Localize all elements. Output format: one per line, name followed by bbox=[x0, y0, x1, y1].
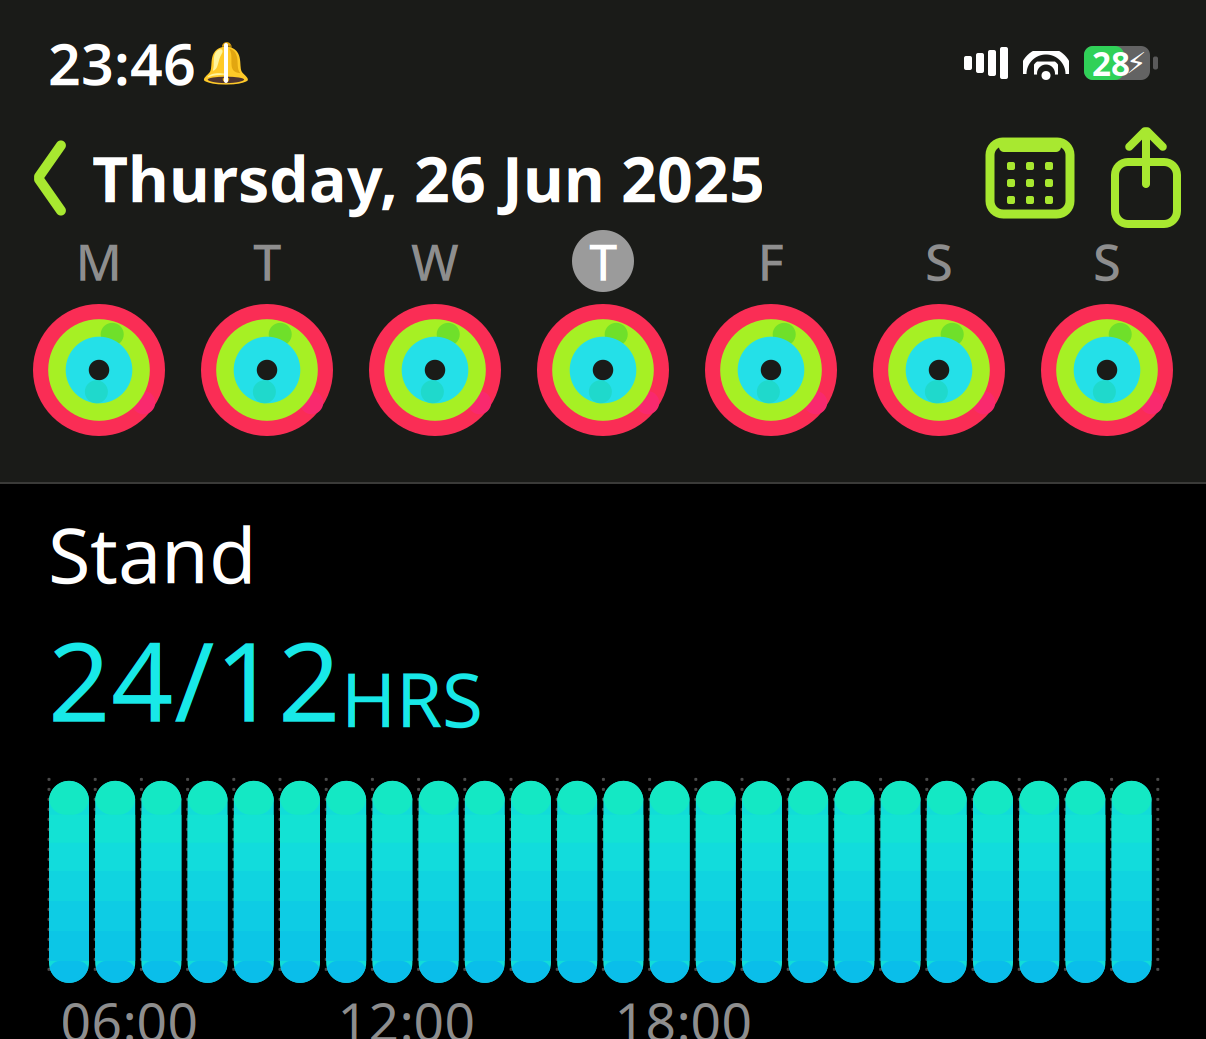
staticText: HRS bbox=[341, 649, 483, 748]
staticText: 18:00 bbox=[614, 985, 752, 1039]
button[interactable]: T bbox=[519, 230, 687, 436]
staticText: 24/12 bbox=[48, 607, 341, 752]
staticText: Thursday, 26 Jun 2025 bbox=[92, 136, 765, 220]
staticText: S bbox=[925, 227, 953, 295]
staticText: T bbox=[589, 227, 617, 295]
staticText: 🔔 bbox=[201, 40, 251, 86]
staticText: F bbox=[757, 227, 784, 295]
staticText: 06:00 bbox=[60, 985, 198, 1039]
staticText: S bbox=[1093, 227, 1121, 295]
staticText: 23:46 bbox=[48, 25, 196, 101]
staticText: ⚡︎ bbox=[1126, 46, 1147, 80]
button[interactable]: S bbox=[855, 230, 1023, 436]
button[interactable]: T bbox=[183, 230, 351, 436]
button[interactable]: Back bbox=[0, 130, 92, 226]
button[interactable]: F bbox=[687, 230, 855, 436]
staticText: 28 bbox=[1092, 41, 1130, 85]
button[interactable]: Calendar bbox=[976, 130, 1084, 226]
button[interactable]: M bbox=[15, 230, 183, 436]
button[interactable]: Share bbox=[1084, 130, 1206, 226]
button[interactable]: W bbox=[351, 230, 519, 436]
staticText: 12:00 bbox=[337, 985, 475, 1039]
staticText: Stand bbox=[48, 502, 257, 605]
staticText: T bbox=[253, 227, 281, 295]
button[interactable]: S bbox=[1023, 230, 1191, 436]
staticText: M bbox=[75, 227, 122, 295]
staticText: W bbox=[411, 227, 459, 295]
